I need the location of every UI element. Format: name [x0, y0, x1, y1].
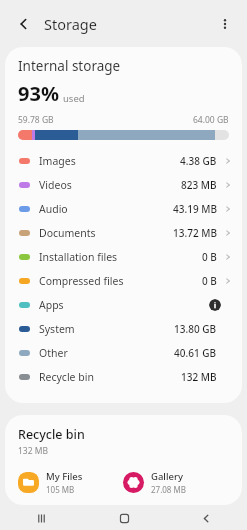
- button[interactable]: Videos: [5, 173, 242, 197]
- button[interactable]: Gallery: [123, 468, 229, 497]
- button[interactable]: Apps: [5, 293, 242, 317]
- staticText: Internal storage: [18, 57, 121, 75]
- staticText: 0 B: [202, 274, 217, 288]
- staticText: 132 MB: [181, 370, 217, 384]
- staticText: Apps: [39, 298, 64, 312]
- button[interactable]: Apps info: [209, 299, 221, 311]
- staticText: Videos: [39, 178, 72, 192]
- button[interactable]: Home: [83, 506, 165, 530]
- staticText: 13.72 MB: [173, 226, 217, 240]
- staticText: 13.80 GB: [174, 322, 217, 336]
- button[interactable]: Other: [5, 341, 242, 365]
- staticText: 64.00 GB: [193, 114, 229, 126]
- button[interactable]: More options: [211, 10, 239, 38]
- staticText: 27.08 MB: [151, 484, 186, 495]
- button[interactable]: Documents: [5, 221, 242, 245]
- staticText: 93%: [18, 80, 59, 107]
- button[interactable]: Images: [5, 149, 242, 173]
- staticText: used: [63, 92, 85, 105]
- staticText: 40.61 GB: [174, 346, 217, 360]
- button[interactable]: Compressed files: [5, 269, 242, 293]
- staticText: My Files: [46, 470, 83, 483]
- staticText: 823 MB: [181, 178, 217, 192]
- staticText: System: [39, 322, 75, 336]
- staticText: 132 MB: [18, 445, 49, 457]
- staticText: Storage: [44, 14, 97, 34]
- staticText: 43.19 MB: [173, 202, 217, 216]
- button[interactable]: Recycle bin: [5, 365, 242, 389]
- button[interactable]: My Files: [18, 468, 123, 497]
- button[interactable]: Audio: [5, 197, 242, 221]
- staticText: Images: [39, 154, 76, 168]
- button[interactable]: Recent apps: [0, 506, 83, 530]
- staticText: Recycle bin: [18, 426, 85, 443]
- button[interactable]: Installation files: [5, 245, 242, 269]
- staticText: Installation files: [39, 250, 118, 264]
- staticText: 105 MB: [46, 484, 75, 495]
- staticText: 4.38 GB: [180, 154, 217, 168]
- button[interactable]: Back: [165, 506, 247, 530]
- staticText: Recycle bin: [39, 370, 94, 384]
- staticText: Audio: [39, 202, 68, 216]
- staticText: 0 B: [202, 250, 217, 264]
- button[interactable]: Back: [10, 10, 38, 38]
- button[interactable]: System: [5, 317, 242, 341]
- staticText: 59.78 GB: [18, 114, 54, 126]
- staticText: Gallery: [151, 470, 183, 483]
- staticText: Documents: [39, 226, 96, 240]
- staticText: Other: [39, 346, 68, 360]
- staticText: Compressed files: [39, 274, 124, 288]
